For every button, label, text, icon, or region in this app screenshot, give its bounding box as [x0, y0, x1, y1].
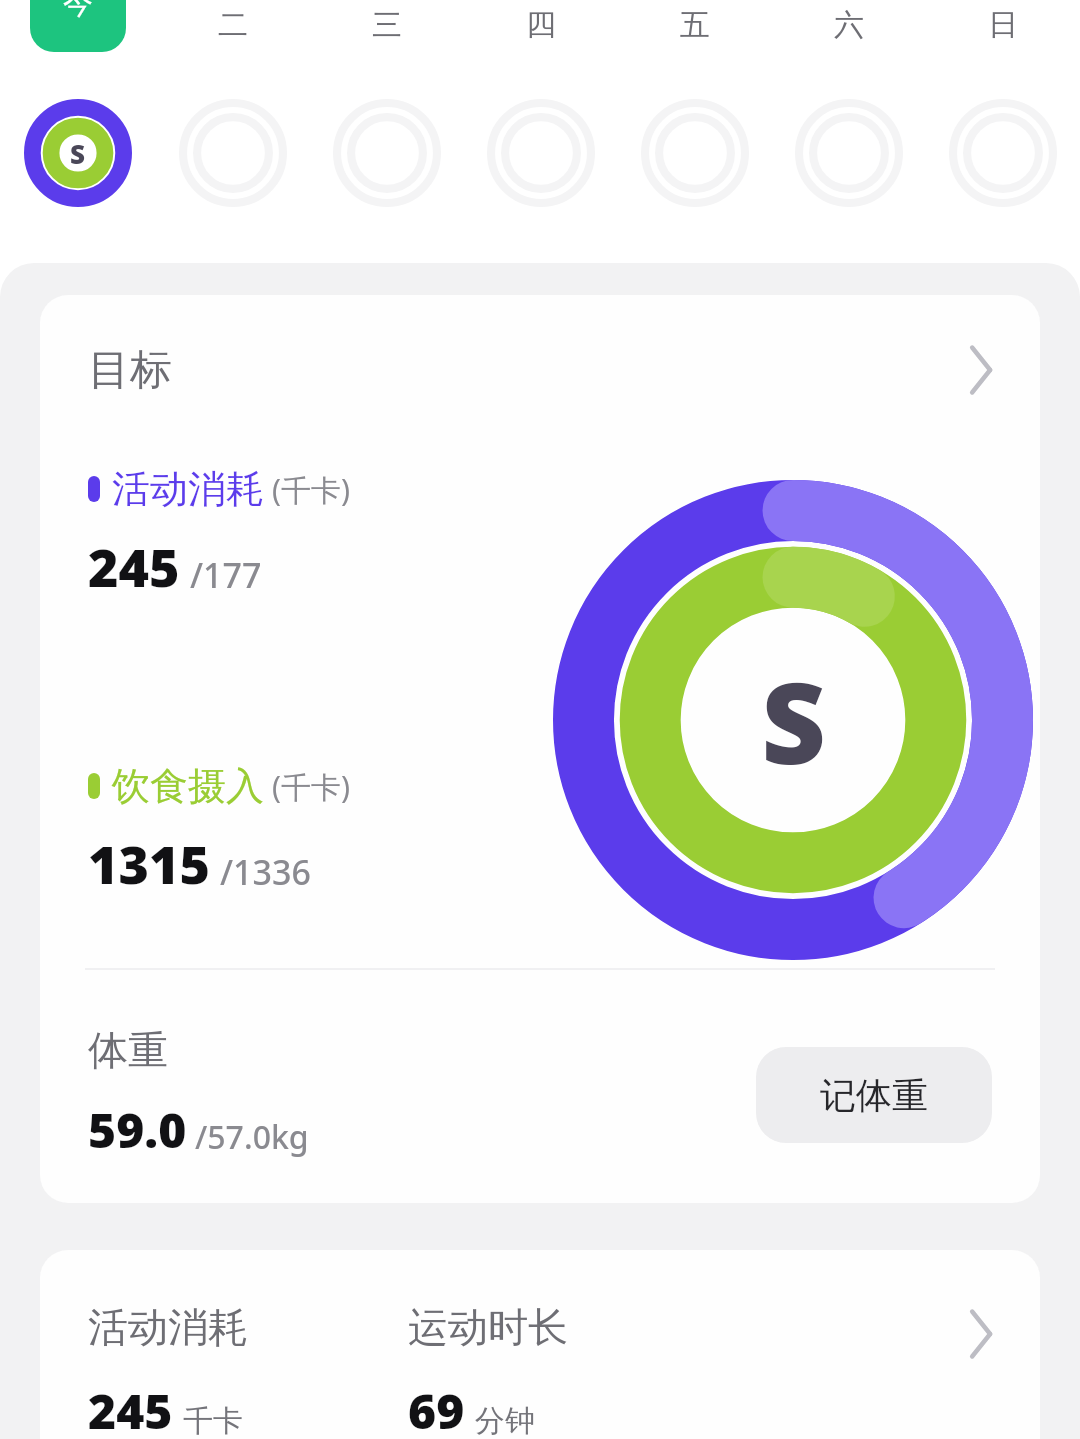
button[interactable]: 今: [0, 0, 155, 78]
button[interactable]: Day rings: [926, 88, 1080, 218]
button[interactable]: 二: [155, 0, 310, 78]
button[interactable]: Day rings: [772, 88, 926, 218]
staticText: 59.0: [88, 1097, 187, 1162]
staticText: 六: [834, 6, 864, 44]
staticText: /177: [190, 552, 262, 598]
staticText: (千卡): [272, 766, 350, 807]
button[interactable]: 目标: [40, 295, 1040, 445]
staticText: /57.0kg: [195, 1115, 309, 1159]
button[interactable]: 六: [772, 0, 926, 78]
button[interactable]: Day rings: [464, 88, 618, 218]
button[interactable]: Day rings: [310, 88, 464, 218]
staticText: 运动时长: [408, 1302, 568, 1352]
staticText: 记体重: [820, 1073, 928, 1118]
staticText: S: [761, 644, 826, 797]
staticText: 二: [218, 6, 248, 44]
staticText: 日: [988, 6, 1018, 44]
staticText: 四: [526, 6, 556, 44]
button[interactable]: 日: [926, 0, 1080, 78]
staticText: 活动消耗: [88, 1302, 408, 1352]
button[interactable]: 活动消耗: [40, 1250, 1040, 1439]
staticText: 千卡: [183, 1402, 243, 1439]
button[interactable]: 三: [310, 0, 464, 78]
button[interactable]: 五: [618, 0, 772, 78]
staticText: /1336: [220, 849, 311, 895]
staticText: 今: [63, 0, 93, 22]
staticText: S: [70, 136, 86, 171]
staticText: 体重: [88, 1025, 168, 1075]
staticText: 五: [680, 6, 710, 44]
staticText: 69: [408, 1378, 465, 1439]
staticText: (千卡): [272, 469, 350, 510]
staticText: 饮食摄入: [112, 762, 264, 810]
button[interactable]: 四: [464, 0, 618, 78]
button[interactable]: Today rings: [0, 88, 155, 218]
button[interactable]: Day rings: [155, 88, 310, 218]
button[interactable]: 记体重: [756, 1047, 992, 1143]
staticText: 245: [88, 531, 180, 602]
staticText: 三: [372, 6, 402, 44]
staticText: 1315: [88, 828, 210, 899]
staticText: 活动消耗: [112, 465, 264, 513]
button[interactable]: Day rings: [618, 88, 772, 218]
staticText: 目标: [88, 344, 172, 397]
staticText: 245: [88, 1378, 173, 1439]
staticText: 分钟: [475, 1402, 535, 1439]
